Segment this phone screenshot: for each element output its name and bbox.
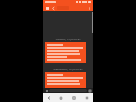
button[interactable] [45, 42, 86, 63]
staticText: TUESDAY, 14 JANUARY [55, 37, 81, 40]
staticText: WEDNESDAY, 15 JANUARY [53, 67, 83, 70]
button[interactable]: Send [88, 89, 91, 92]
button[interactable]: Back [51, 6, 55, 10]
button[interactable]: Menu [45, 6, 49, 10]
button[interactable]: Menu [80, 93, 93, 102]
button[interactable]: Back [43, 93, 55, 102]
button[interactable]: Recents [67, 93, 80, 102]
button[interactable] [45, 72, 86, 88]
button[interactable]: Home [55, 93, 67, 102]
button[interactable]: More options [87, 6, 91, 10]
button[interactable]: Attach [45, 89, 48, 92]
